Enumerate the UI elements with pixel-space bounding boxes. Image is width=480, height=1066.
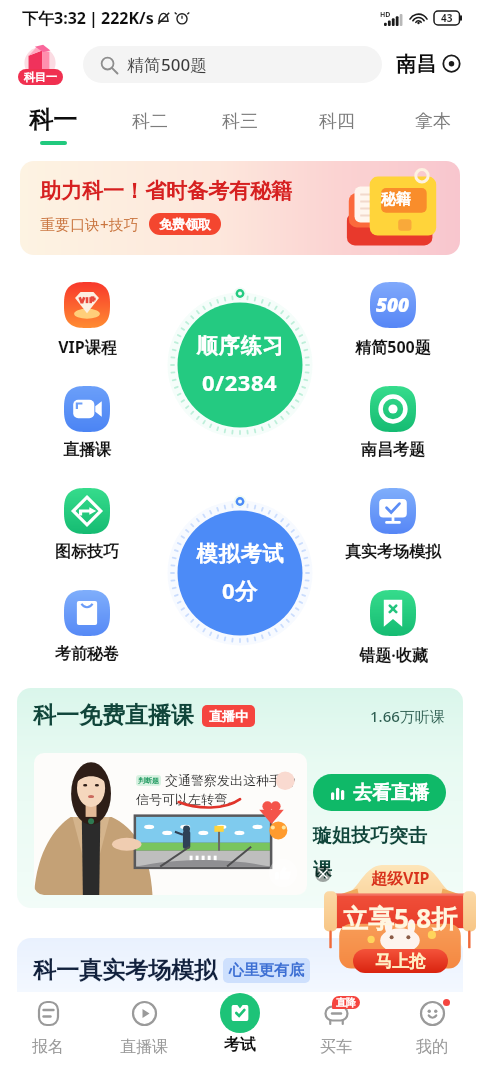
button[interactable]: 精简500题 xyxy=(83,46,382,83)
button[interactable]: 直播课 xyxy=(22,386,152,460)
button[interactable]: 科四 xyxy=(303,92,371,145)
staticText: 科四 xyxy=(319,110,355,133)
button[interactable]: 科一 xyxy=(19,92,87,145)
staticText: 下午3:32 xyxy=(22,7,86,29)
staticText: 直播课 xyxy=(120,1037,168,1057)
staticText: 科一 xyxy=(29,105,77,135)
button[interactable]: 直降 xyxy=(288,992,384,1066)
staticText: 南昌 xyxy=(396,52,436,77)
staticText: 顺序练习 xyxy=(196,333,284,359)
button[interactable]: 科目一秘籍 xyxy=(14,38,66,90)
staticText: HD xyxy=(380,10,391,20)
staticText: 重要口诀+技巧 xyxy=(40,214,139,234)
staticText: 图标技巧 xyxy=(55,542,119,562)
button[interactable]: 错题·收藏 xyxy=(328,590,458,666)
staticText: VIP课程 xyxy=(58,336,117,358)
staticText: 0分 xyxy=(222,575,258,605)
button[interactable]: 我的 xyxy=(384,992,480,1066)
staticText: 43 xyxy=(441,11,453,25)
button[interactable]: 图标技巧 xyxy=(22,488,152,562)
staticText: 信号可以左转弯。 xyxy=(136,791,240,807)
button[interactable]: 科三 xyxy=(206,92,274,145)
button[interactable]: 顺序练习 xyxy=(164,285,316,437)
staticText: 立享5.8折 xyxy=(342,900,458,936)
staticText: 秘籍 xyxy=(381,190,411,209)
button[interactable]: 科一免费直播课 xyxy=(17,688,463,908)
button[interactable]: 科二 xyxy=(116,92,184,145)
button[interactable]: 南昌 xyxy=(396,52,462,77)
button[interactable]: 南昌考题 xyxy=(328,386,458,460)
button[interactable]: 考前秘卷 xyxy=(22,590,152,664)
button[interactable]: VIP课程 xyxy=(22,282,152,358)
staticText: 精简500题 xyxy=(355,336,431,358)
staticText: 错题·收藏 xyxy=(359,644,428,666)
staticText: 助力科一！省时备考有秘籍 xyxy=(40,178,292,204)
staticText: 科目一 xyxy=(24,70,57,84)
staticText: 交通警察发出这种手势 xyxy=(165,772,305,788)
staticText: 拿本 xyxy=(415,110,451,133)
staticText: 我的 xyxy=(416,1037,448,1057)
staticText: 考前秘卷 xyxy=(55,644,119,664)
staticText: 免费领取 xyxy=(159,216,211,232)
button[interactable]: 助力科一！省时备考有秘籍 xyxy=(20,161,460,255)
staticText: 科二 xyxy=(132,110,168,133)
staticText: 去看直播 xyxy=(353,781,429,805)
staticText: 心里更有底 xyxy=(229,961,304,980)
staticText: 科一真实考场模拟 xyxy=(33,956,217,985)
staticText: 500 xyxy=(376,292,410,318)
staticText: 模拟考试 xyxy=(196,541,284,567)
staticText: 判断题 xyxy=(138,776,159,785)
staticText: 直播中 xyxy=(209,708,248,724)
button[interactable]: 报名 xyxy=(0,992,96,1066)
button[interactable]: 关闭 xyxy=(315,866,331,882)
button[interactable]: 科一真实考场模拟 xyxy=(17,938,463,992)
button[interactable]: 模拟考试 xyxy=(164,493,316,645)
staticText: 科一免费直播课 xyxy=(33,701,194,730)
staticText: 222K/s xyxy=(101,7,154,29)
button[interactable]: 超级VIP xyxy=(324,861,476,973)
button[interactable]: 去看直播 xyxy=(313,774,446,811)
staticText: 直降 xyxy=(336,996,356,1009)
staticText: 超级VIP xyxy=(371,867,430,889)
staticText: 考试 xyxy=(224,1035,256,1055)
button[interactable]: 直播课 xyxy=(96,992,192,1066)
staticText: | xyxy=(89,7,98,29)
staticText: 1.66万听课 xyxy=(370,706,445,726)
staticText: 直播课 xyxy=(63,440,111,460)
staticText: 真实考场模拟 xyxy=(345,542,441,562)
button[interactable]: 拿本 xyxy=(399,92,467,145)
staticText: 马上抢 xyxy=(375,951,426,971)
staticText: 报名 xyxy=(32,1037,64,1057)
staticText: 0/2384 xyxy=(202,367,278,397)
staticText: 南昌考题 xyxy=(361,440,425,460)
button[interactable]: 500 xyxy=(328,282,458,358)
staticText: 买车 xyxy=(320,1037,352,1057)
button[interactable]: 真实考场模拟 xyxy=(328,488,458,562)
staticText: 科三 xyxy=(222,110,258,133)
staticText: 璇姐技巧突击课 xyxy=(313,824,437,882)
staticText: 精简500题 xyxy=(127,53,208,76)
button[interactable]: 考试 xyxy=(192,992,288,1066)
